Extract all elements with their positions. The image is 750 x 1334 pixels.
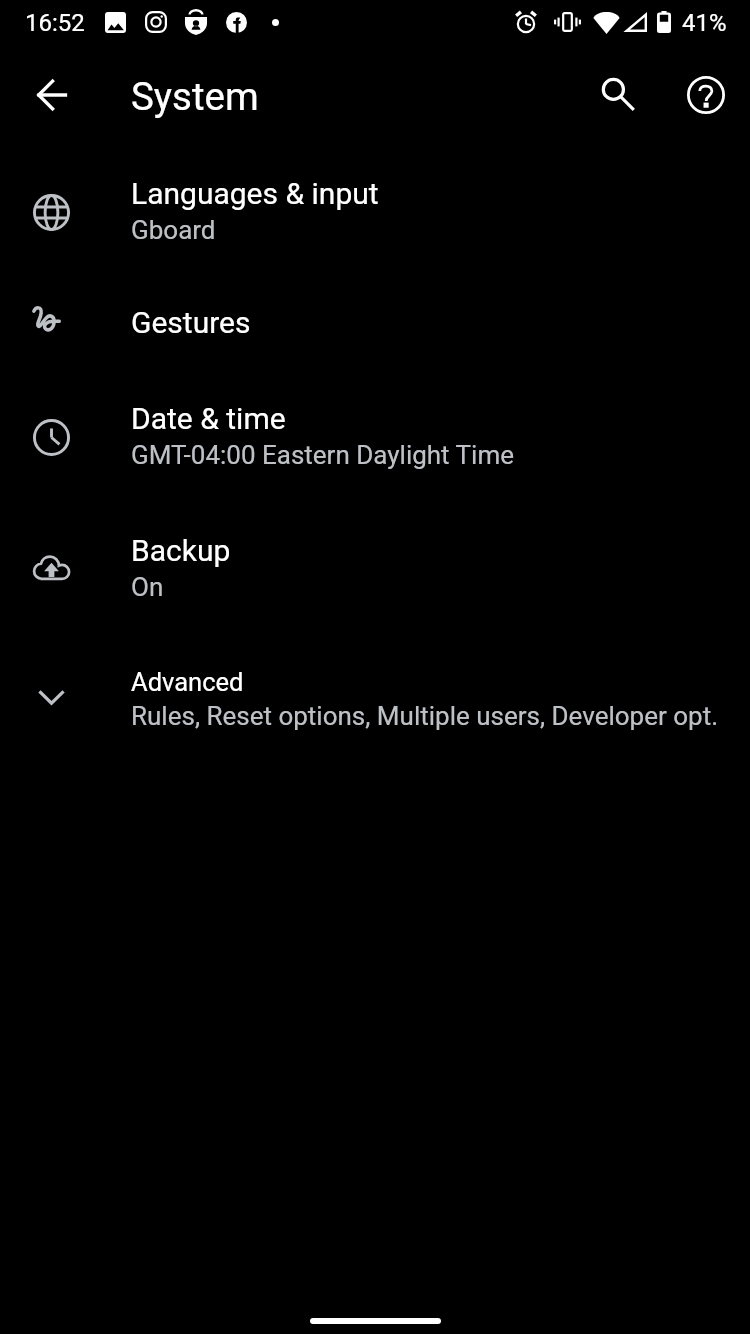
staticText: Languages & input	[131, 176, 379, 211]
button[interactable]: Navigate up	[22, 65, 81, 124]
staticText: System	[131, 74, 259, 119]
button[interactable]: Gestures	[0, 278, 750, 371]
staticText: Date & time	[131, 401, 286, 436]
button[interactable]: Help	[676, 65, 735, 124]
button[interactable]: Search	[587, 65, 646, 124]
button[interactable]: Backup	[0, 503, 750, 635]
staticText: GMT-04:00 Eastern Daylight Time	[131, 440, 514, 470]
staticText: Gboard	[131, 215, 216, 245]
staticText: On	[131, 572, 164, 602]
staticText: Gestures	[131, 305, 251, 340]
staticText: Backup	[131, 533, 231, 568]
button[interactable]: Advanced	[0, 635, 750, 767]
staticText: 41%	[682, 9, 727, 37]
button[interactable]: Languages & input	[0, 146, 750, 278]
staticText: 16:52	[25, 9, 85, 37]
staticText: Advanced	[131, 667, 244, 697]
button[interactable]: Date & time	[0, 371, 750, 503]
staticText: Rules, Reset options, Multiple users, De…	[131, 701, 718, 731]
